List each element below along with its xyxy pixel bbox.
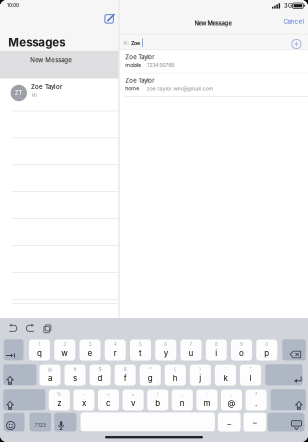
staticText: y [164, 348, 168, 358]
button[interactable]: ( [165, 365, 186, 386]
staticText: . [255, 398, 257, 408]
button[interactable]: 1 [29, 339, 50, 360]
button[interactable]: Emoji [4, 413, 24, 431]
button[interactable]: ' [215, 365, 236, 386]
staticText: a [48, 373, 52, 383]
button[interactable]: 9 [231, 339, 252, 360]
staticText: i [215, 348, 217, 358]
staticText: 7 [189, 341, 192, 347]
staticText: 5 [139, 341, 142, 347]
staticText: .?123 [34, 421, 46, 428]
button[interactable]: Space [81, 412, 215, 431]
button[interactable]: Shift [3, 389, 45, 410]
button[interactable]: ? [246, 389, 267, 410]
staticText: v [131, 398, 135, 408]
staticText: / [157, 391, 159, 397]
staticText: m [203, 398, 210, 408]
staticText: p [264, 348, 269, 358]
button[interactable]: * [140, 365, 161, 386]
button[interactable]: ; [172, 389, 193, 410]
staticText: & [124, 366, 127, 372]
button[interactable]: Underscore [218, 413, 241, 431]
staticText: To: [123, 40, 129, 46]
button[interactable]: % [49, 389, 70, 410]
button[interactable]: Undo [8, 321, 22, 335]
button[interactable]: 2 [54, 339, 75, 360]
staticText: n [180, 398, 185, 408]
button[interactable]: 3 [79, 339, 100, 360]
button[interactable]: Hyphen [243, 413, 266, 431]
button[interactable]: / [147, 389, 168, 410]
staticText: ( [174, 366, 176, 372]
staticText: h [173, 373, 178, 383]
button[interactable]: & [115, 365, 136, 386]
button[interactable]: Compose [104, 13, 116, 25]
button[interactable]: New Message [0, 51, 118, 79]
button[interactable]: 0 [256, 339, 277, 360]
button[interactable]: Backspace [282, 339, 306, 360]
staticText: j [199, 373, 201, 383]
staticText: d [98, 373, 103, 383]
button[interactable]: Zoe Taylor [119, 73, 308, 96]
staticText: q [37, 348, 42, 358]
button[interactable]: ZT [0, 79, 118, 111]
staticText: 3 [88, 341, 91, 347]
staticText: + [107, 391, 110, 397]
button[interactable]: Add contact [292, 39, 301, 49]
button[interactable]: Shift [270, 389, 306, 410]
button[interactable]: : [196, 389, 217, 410]
button[interactable]: Zoe Taylor [119, 50, 308, 73]
staticText: 3G [284, 2, 292, 9]
button[interactable]: = [123, 389, 144, 410]
staticText: New Message [194, 20, 231, 27]
staticText: " [249, 366, 251, 372]
button[interactable]: ) [190, 365, 211, 386]
staticText: @ [47, 366, 52, 372]
button[interactable]: 6 [155, 339, 176, 360]
staticText: # [74, 366, 77, 372]
button[interactable]: , [221, 389, 242, 410]
button[interactable]: # [65, 365, 86, 386]
staticText: 123456789 [147, 62, 174, 68]
button[interactable]: Dictate [54, 413, 76, 431]
staticText: g [148, 373, 153, 383]
staticText: - [83, 391, 85, 397]
staticText: 9 [240, 341, 243, 347]
button[interactable]: Return [265, 364, 303, 385]
button[interactable]: 8 [206, 339, 227, 360]
button[interactable]: Cancel [280, 16, 306, 26]
button[interactable]: Paste [43, 323, 52, 333]
staticText: * [149, 366, 151, 372]
staticText: ? [255, 391, 257, 397]
staticText: 4 [114, 341, 117, 347]
staticText: = [132, 391, 135, 397]
staticText: 2 [63, 341, 66, 347]
button[interactable]: $ [90, 365, 111, 386]
button[interactable]: Numbers and symbols [30, 413, 51, 431]
staticText: Zoe Taylor [31, 83, 62, 91]
button[interactable]: " [240, 365, 261, 386]
staticText: Zoe Taylor [125, 77, 154, 84]
staticText: ; [182, 391, 183, 397]
staticText: k [223, 373, 227, 383]
staticText: Messages [8, 35, 65, 49]
button[interactable]: Tab [4, 339, 23, 360]
staticText: ZT [15, 89, 23, 96]
button[interactable]: Shift [3, 364, 36, 385]
staticText: u [188, 348, 193, 358]
button[interactable]: 4 [105, 339, 126, 360]
staticText: z [57, 398, 61, 408]
staticText: zoe.taylor.wm@gmail.com [146, 85, 213, 92]
staticText: t [139, 348, 142, 358]
button[interactable]: Redo [25, 321, 39, 335]
button[interactable]: - [73, 389, 94, 410]
staticText: 1 [38, 341, 40, 347]
button[interactable]: + [98, 389, 119, 410]
staticText: o [239, 348, 244, 358]
button[interactable]: @ [39, 365, 60, 386]
button[interactable]: Hide keyboard [268, 413, 305, 431]
button[interactable]: 7 [180, 339, 201, 360]
staticText: ) [199, 366, 201, 372]
button[interactable]: 5 [130, 339, 151, 360]
staticText: @ [227, 398, 235, 408]
